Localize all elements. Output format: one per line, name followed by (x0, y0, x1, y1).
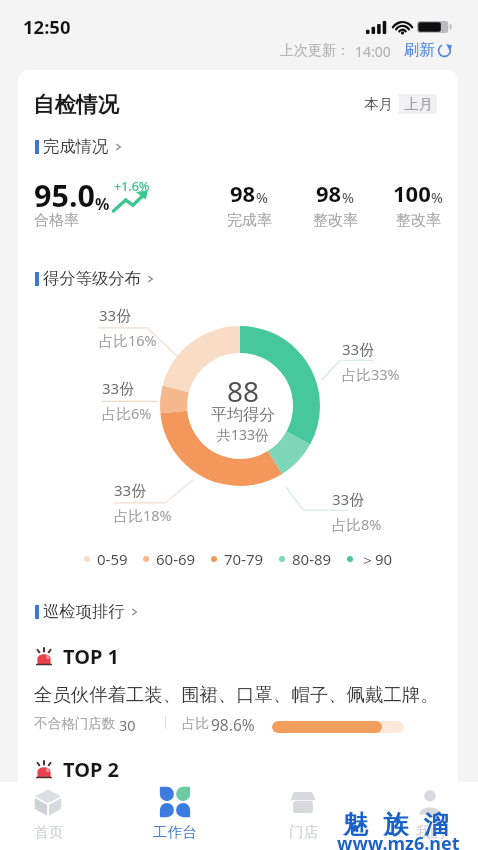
staticText: 魅 族 溜 (343, 806, 454, 840)
staticText: % (431, 188, 443, 207)
staticText: 本月 (364, 95, 393, 113)
staticText: 整改率 (313, 211, 358, 230)
button[interactable]: 得分等级分布 (35, 268, 155, 289)
staticText: 占比8% (332, 514, 382, 534)
staticText: 80-89 (292, 549, 332, 569)
staticText: 工作台 (153, 823, 197, 841)
staticText: +1.6% (114, 178, 150, 195)
staticText: 33份 (342, 339, 375, 359)
staticText: ＞90 (360, 549, 393, 569)
staticText: % (342, 188, 354, 207)
staticText: 33份 (99, 305, 132, 325)
staticText: 上月 (404, 95, 433, 113)
staticText: 完成情况 (43, 136, 109, 157)
staticText: 30 (119, 715, 136, 735)
staticText: % (95, 193, 110, 215)
staticText: 占比33% (342, 364, 400, 384)
staticText: 共133份 (217, 425, 270, 444)
button[interactable]: 门店 (276, 782, 330, 850)
staticText: 占比18% (114, 505, 172, 525)
button[interactable]: 本月 (358, 94, 399, 114)
button[interactable]: TOP 1 (34, 643, 120, 670)
staticText: 占比 (182, 715, 210, 732)
staticText: 98 (230, 178, 256, 208)
staticText: 平均得分 (211, 405, 275, 425)
staticText: TOP 2 (63, 756, 120, 783)
staticText: 98.6% (211, 714, 255, 735)
staticText: 上次更新： (280, 42, 350, 60)
button[interactable]: 工作台 (148, 782, 202, 850)
staticText: 巡检项排行 (43, 601, 125, 622)
staticText: 95.0 (34, 174, 95, 216)
button[interactable]: 巡检项排行 (35, 601, 139, 622)
staticText: % (256, 188, 268, 207)
staticText: 完成率 (227, 211, 272, 230)
staticText: 88 (227, 372, 260, 410)
staticText: 门店 (289, 823, 318, 841)
staticText: 70-79 (224, 549, 264, 569)
button[interactable]: 我的 (403, 782, 457, 850)
staticText: 不合格门店数 (34, 715, 116, 732)
staticText: 整改率 (396, 211, 441, 230)
staticText: 全员伙伴着工装、围裙、口罩、帽子、佩戴工牌。 (34, 683, 439, 706)
staticText: 12:50 (23, 14, 71, 39)
staticText: 刷新 (404, 40, 435, 60)
staticText: 占比16% (99, 330, 157, 350)
button[interactable]: 完成情况 (35, 136, 123, 157)
staticText: 100 (393, 178, 431, 208)
button[interactable]: 首页 (21, 782, 75, 850)
button[interactable]: 上月 (399, 94, 437, 114)
button[interactable]: 刷新 (404, 40, 452, 60)
staticText: 合格率 (34, 211, 79, 230)
button[interactable]: TOP 2 (34, 756, 120, 783)
staticText: 33份 (332, 489, 365, 509)
staticText: 98 (316, 178, 342, 208)
staticText: 33份 (102, 378, 135, 398)
staticText: 60-69 (156, 549, 196, 569)
staticText: TOP 1 (63, 643, 120, 670)
staticText: 自检情况 (33, 91, 119, 118)
staticText: www.mz6.net (337, 831, 460, 850)
staticText: 33份 (114, 480, 147, 500)
staticText: 14:00 (355, 42, 391, 61)
staticText: 得分等级分布 (43, 268, 141, 289)
staticText: 我的 (416, 823, 445, 841)
staticText: 0-59 (97, 549, 128, 569)
staticText: 首页 (34, 823, 63, 841)
staticText: 占比6% (102, 403, 152, 423)
